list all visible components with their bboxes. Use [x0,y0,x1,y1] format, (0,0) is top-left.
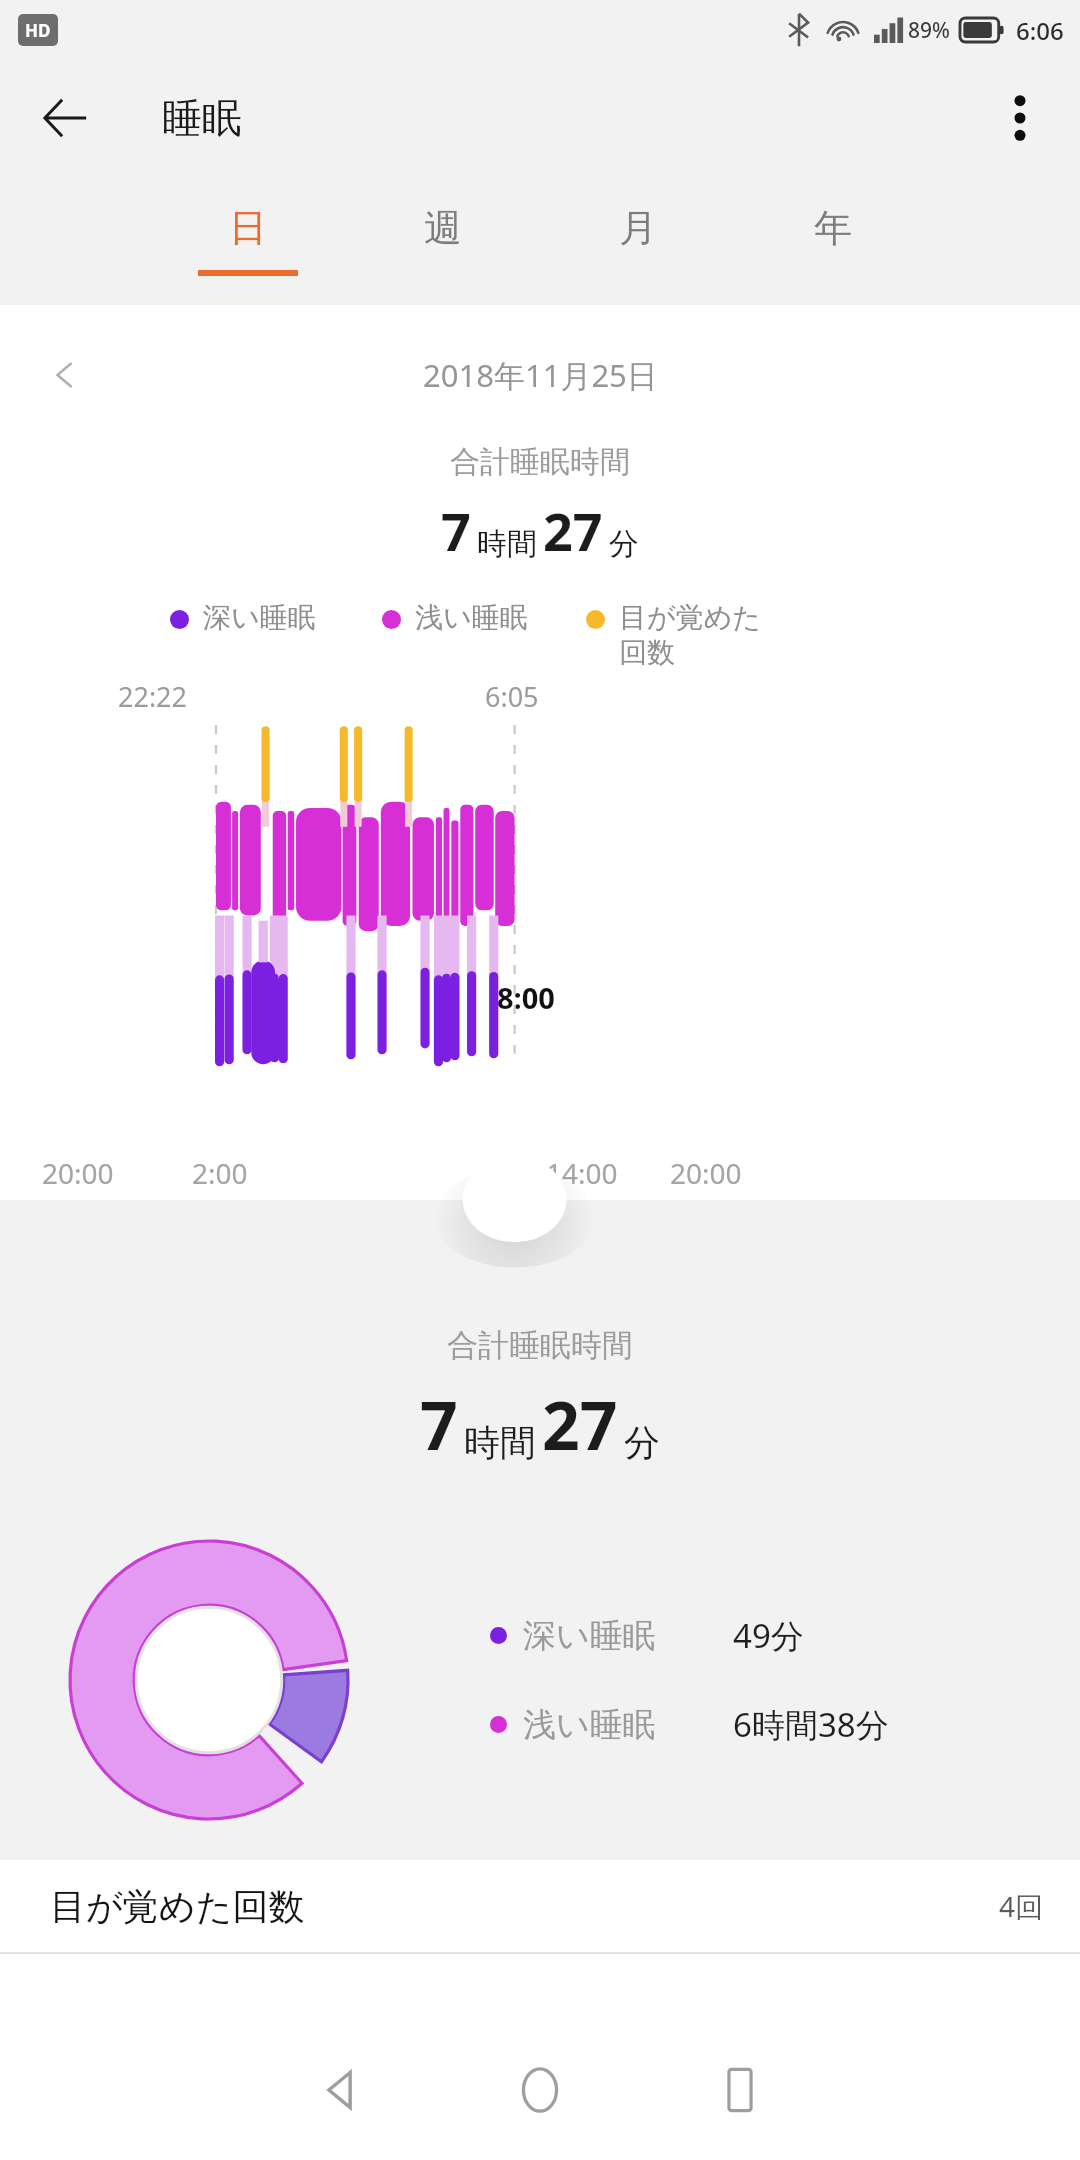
button[interactable]: Back [240,2020,440,2160]
staticText: 時間 [464,1420,536,1465]
staticText: 22:22 [118,678,188,715]
button[interactable]: More options [984,82,1056,154]
button[interactable]: 年 [735,175,930,305]
staticText: 6:05 [485,678,539,715]
button[interactable]: 目が覚めた回数 [0,1860,1080,1952]
staticText: 2018年11月25日 [423,354,658,396]
staticText: 時間 [477,525,537,563]
button[interactable]: 月 [540,175,735,305]
staticText: HD [25,19,51,42]
staticText: 6:06 [1016,14,1064,47]
staticText: 月 [619,204,657,252]
button[interactable]: Home [440,2020,640,2160]
button[interactable]: 浅い睡眠 [490,1702,889,1747]
button[interactable]: Back [30,82,102,154]
staticText: 合計睡眠時間 [0,443,1080,481]
staticText: 睡眠 [162,93,242,143]
staticText: 分 [609,525,639,563]
staticText: 27 [543,495,603,566]
staticText: 深い睡眠 [203,600,316,635]
staticText: 20:00 [42,1154,114,1192]
button[interactable]: Previous day [30,340,100,410]
staticText: 89% [908,16,950,45]
staticText: 27 [542,1379,618,1469]
staticText: 週 [424,204,462,252]
staticText: 合計睡眠時間 [447,1326,633,1365]
staticText: 8:00 [497,978,555,1017]
staticText: 分 [624,1420,660,1465]
button[interactable]: 週 [345,175,540,305]
staticText: 4回 [999,1887,1044,1925]
staticText: 浅い睡眠 [415,600,528,635]
button[interactable]: 日 [150,175,345,305]
button[interactable]: Recent apps [640,2020,840,2160]
staticText: 6時間38分 [733,1702,889,1747]
staticText: 回数 [619,635,675,670]
button[interactable]: 深い睡眠 [490,1613,804,1658]
staticText: 浅い睡眠 [523,1704,733,1746]
staticText: 日 [229,204,267,252]
staticText: 深い睡眠 [523,1615,733,1657]
staticText: 7 [441,495,471,566]
staticText: 年 [814,204,852,252]
staticText: 2:00 [192,1154,248,1192]
staticText: 目が覚めた回数 [50,1884,305,1929]
staticText: 7 [420,1379,458,1469]
staticText: 49分 [733,1613,804,1658]
staticText: 目が覚めた [619,600,761,635]
staticText: 20:00 [670,1154,742,1192]
staticText: 14:00 [546,1154,618,1192]
